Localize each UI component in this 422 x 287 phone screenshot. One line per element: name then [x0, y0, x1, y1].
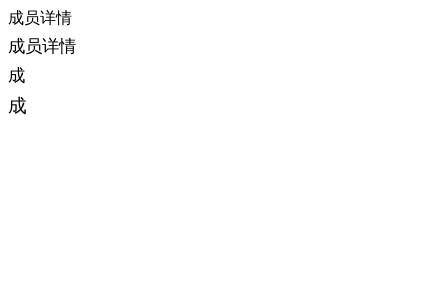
staticText: 成员详情: [8, 8, 72, 28]
staticText: 成: [8, 94, 27, 117]
staticText: 成: [8, 65, 25, 86]
staticText: 成员详情: [8, 36, 76, 57]
